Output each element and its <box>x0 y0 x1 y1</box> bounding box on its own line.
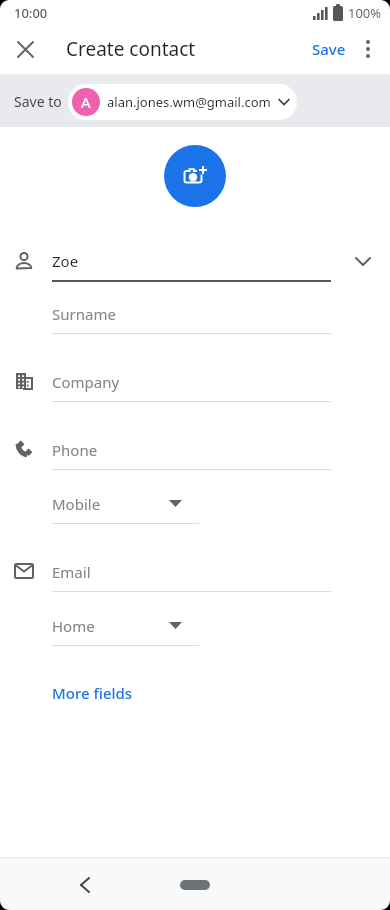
button[interactable]: Zoe <box>0 0 27 28</box>
staticText: 10:00 <box>14 4 48 22</box>
staticText: alan.jones.wm@gmail.com <box>107 93 271 111</box>
button[interactable]: Surname <box>0 0 64 28</box>
button[interactable] <box>69 869 101 901</box>
staticText: Mobile <box>52 494 101 514</box>
button[interactable] <box>352 33 384 65</box>
button[interactable]: Company <box>0 0 68 28</box>
staticText: A <box>81 92 91 112</box>
button[interactable] <box>180 880 210 890</box>
staticText: Zoe <box>52 251 79 271</box>
button[interactable]: A <box>68 84 297 120</box>
button[interactable] <box>347 246 379 278</box>
button[interactable]: Mobile <box>0 0 49 28</box>
button[interactable]: Email <box>0 0 39 28</box>
button[interactable]: Phone <box>0 0 46 28</box>
staticText: Phone <box>52 440 98 460</box>
staticText: Company <box>52 372 120 392</box>
button[interactable] <box>9 33 41 65</box>
staticText: Create contact <box>66 36 196 62</box>
staticText: Save to <box>14 92 62 111</box>
button[interactable]: More fields <box>0 0 81 28</box>
staticText: More fields <box>52 683 133 703</box>
staticText: Surname <box>52 304 116 324</box>
staticText: Save <box>312 39 346 59</box>
staticText: Email <box>52 562 91 582</box>
button[interactable]: Home <box>0 0 43 28</box>
button[interactable]: Save <box>0 0 34 28</box>
staticText: Home <box>52 616 95 636</box>
button[interactable] <box>164 145 226 207</box>
staticText: 100% <box>348 4 382 22</box>
